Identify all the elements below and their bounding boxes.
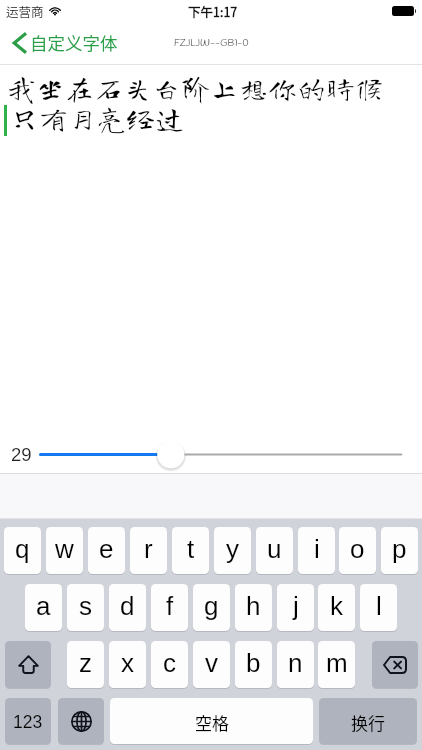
button[interactable]: n [277,641,314,688]
button[interactable] [0,436,422,474]
button[interactable]: t [172,527,209,574]
button[interactable]: y [214,527,251,574]
staticText: 空格 [195,710,229,735]
button[interactable]: Backspace [372,641,418,688]
staticText: d [120,591,135,620]
staticText: y [226,534,239,563]
staticText: j [293,591,299,620]
button[interactable]: z [67,641,104,688]
button[interactable]: m [318,641,355,688]
button[interactable]: c [151,641,188,688]
staticText: k [330,591,343,620]
staticText: FZJLJW--GB1-0 [174,37,249,50]
staticText: r [144,534,153,563]
button[interactable]: q [4,527,41,574]
button[interactable]: d [109,584,146,631]
staticText: e [99,534,114,563]
staticText: 只有月亮经过 [10,103,185,132]
staticText: 自定义字体 [30,30,118,55]
staticText: b [246,648,261,677]
staticText: p [392,534,407,563]
button[interactable]: v [193,641,230,688]
button[interactable]: l [360,584,397,631]
staticText: 换行 [351,710,385,735]
button[interactable]: p [381,527,418,574]
button[interactable]: 换行 [319,698,417,744]
button[interactable]: j [277,584,314,631]
staticText: 123 [13,712,43,732]
staticText: g [204,591,219,620]
button[interactable]: r [130,527,167,574]
button[interactable]: o [339,527,376,574]
staticText: v [205,648,218,677]
staticText: h [246,591,261,620]
staticText: 29 [11,444,32,465]
button[interactable]: 自定义字体 [13,23,118,63]
button[interactable]: h [235,584,272,631]
staticText: i [314,534,320,563]
button[interactable]: 123 [5,698,51,744]
staticText: n [288,648,303,677]
button[interactable]: 我坐在石头台阶上想你的时候 [0,65,422,448]
staticText: 我坐在石头台阶上想你的时候 [7,73,385,102]
staticText: l [376,591,382,620]
button[interactable]: 空格 [110,698,313,744]
button[interactable]: x [109,641,146,688]
staticText: z [79,648,92,677]
button[interactable]: u [256,527,293,574]
staticText: a [36,591,51,620]
staticText: w [55,534,74,563]
staticText: 下午1:17 [188,2,238,20]
staticText: 运营商 [6,2,44,20]
button[interactable]: a [25,584,62,631]
staticText: u [267,534,282,563]
button[interactable]: Shift [5,641,51,688]
staticText: t [187,534,195,563]
button[interactable]: f [151,584,188,631]
button[interactable]: k [318,584,355,631]
button[interactable]: w [46,527,83,574]
button[interactable]: i [298,527,335,574]
button[interactable]: b [235,641,272,688]
button[interactable]: s [67,584,104,631]
staticText: f [166,591,174,620]
button[interactable]: Switch keyboard [58,698,104,744]
button[interactable]: g [193,584,230,631]
staticText: c [163,648,176,677]
staticText: s [79,591,92,620]
staticText: m [326,648,348,677]
button[interactable]: e [88,527,125,574]
staticText: o [350,534,365,563]
staticText: x [121,648,134,677]
staticText: q [15,534,30,563]
